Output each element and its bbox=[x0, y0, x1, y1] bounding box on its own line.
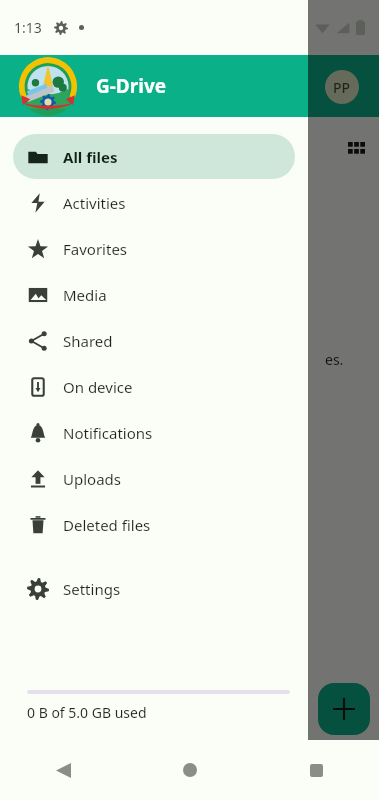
button[interactable]: On device bbox=[13, 364, 295, 409]
staticText: Shared bbox=[63, 331, 113, 351]
button[interactable]: Uploads bbox=[13, 456, 295, 501]
staticText: Uploads bbox=[63, 469, 121, 489]
staticText: G-Drive bbox=[96, 73, 167, 99]
button[interactable]: Home bbox=[127, 740, 253, 800]
button[interactable]: Grid view bbox=[338, 132, 374, 168]
button[interactable]: All files bbox=[13, 134, 295, 179]
button[interactable]: Shared bbox=[13, 318, 295, 363]
button[interactable]: Favorites bbox=[13, 226, 295, 271]
button[interactable]: Add bbox=[318, 683, 370, 735]
button[interactable]: Recents bbox=[253, 740, 379, 800]
button[interactable]: Notifications bbox=[13, 410, 295, 455]
staticText: Media bbox=[63, 285, 107, 305]
button[interactable]: Back bbox=[0, 740, 127, 800]
staticText: Deleted files bbox=[63, 515, 151, 535]
button[interactable]: Activities bbox=[13, 180, 295, 225]
staticText: Favorites bbox=[63, 239, 128, 259]
button[interactable]: Deleted files bbox=[13, 502, 295, 547]
staticText: 1:13 bbox=[14, 18, 42, 37]
staticText: 0 B of 5.0 GB used bbox=[27, 703, 147, 722]
staticText: On device bbox=[63, 377, 133, 397]
staticText: es. bbox=[325, 350, 344, 369]
button[interactable]: Settings bbox=[13, 566, 295, 611]
staticText: Notifications bbox=[63, 423, 153, 443]
staticText: All files bbox=[63, 147, 118, 167]
staticText: Settings bbox=[63, 579, 121, 599]
staticText: Activities bbox=[63, 193, 126, 213]
button[interactable]: Media bbox=[13, 272, 295, 317]
staticText: PP bbox=[333, 78, 351, 97]
button[interactable]: PP bbox=[325, 70, 359, 104]
